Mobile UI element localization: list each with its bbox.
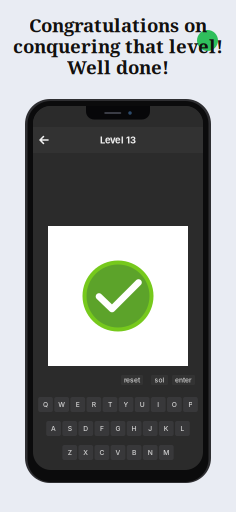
staticText: Well done! bbox=[67, 54, 169, 80]
staticText: E bbox=[76, 400, 80, 409]
staticText: Q bbox=[43, 400, 48, 409]
staticText: H bbox=[132, 424, 137, 433]
button[interactable]: N bbox=[143, 445, 157, 460]
button[interactable]: U bbox=[135, 397, 149, 412]
staticText: T bbox=[108, 400, 112, 409]
staticText: N bbox=[148, 448, 153, 457]
button[interactable]: K bbox=[159, 421, 174, 436]
button[interactable]: Z bbox=[62, 445, 77, 460]
staticText: F bbox=[100, 424, 104, 433]
staticText: W bbox=[58, 400, 65, 409]
staticText: S bbox=[68, 424, 72, 433]
button[interactable]: A bbox=[46, 421, 61, 436]
button[interactable]: W bbox=[54, 397, 69, 412]
button[interactable]: O bbox=[167, 397, 182, 412]
staticText: X bbox=[83, 448, 88, 457]
staticText: U bbox=[140, 400, 145, 409]
staticText: G bbox=[115, 424, 120, 433]
staticText: M bbox=[163, 448, 169, 457]
button[interactable]: H bbox=[127, 421, 141, 436]
button[interactable]: M bbox=[159, 445, 174, 460]
staticText: P bbox=[188, 400, 192, 409]
staticText: D bbox=[83, 424, 88, 433]
button[interactable]: X bbox=[78, 445, 93, 460]
button[interactable]: L bbox=[175, 421, 190, 436]
staticText: C bbox=[99, 448, 104, 457]
button[interactable]: F bbox=[94, 421, 109, 436]
button[interactable]: C bbox=[94, 445, 109, 460]
button[interactable]: T bbox=[103, 397, 117, 412]
staticText: Level 13 bbox=[100, 134, 136, 146]
staticText: A bbox=[51, 424, 56, 433]
button[interactable]: D bbox=[78, 421, 93, 436]
button[interactable]: R bbox=[86, 397, 101, 412]
staticText: B bbox=[132, 448, 136, 457]
button[interactable]: B bbox=[127, 445, 141, 460]
staticText: sol bbox=[154, 376, 164, 384]
staticText: enter bbox=[175, 376, 192, 384]
staticText: I bbox=[157, 400, 159, 409]
button[interactable]: S bbox=[62, 421, 77, 436]
button[interactable]: enter bbox=[172, 375, 195, 385]
staticText: Congratulations on bbox=[29, 12, 207, 38]
button[interactable]: Back bbox=[33, 129, 55, 150]
button[interactable]: P bbox=[183, 397, 198, 412]
button[interactable]: J bbox=[143, 421, 157, 436]
staticText: K bbox=[164, 424, 169, 433]
staticText: Y bbox=[123, 400, 128, 409]
staticText: reset bbox=[124, 376, 140, 384]
staticText: R bbox=[92, 400, 96, 409]
button[interactable]: reset bbox=[121, 375, 143, 385]
staticText: L bbox=[180, 424, 184, 433]
button[interactable]: V bbox=[111, 445, 125, 460]
staticText: Z bbox=[68, 448, 72, 457]
button[interactable]: I bbox=[151, 397, 166, 412]
staticText: V bbox=[115, 448, 120, 457]
button[interactable]: sol bbox=[151, 375, 168, 385]
button[interactable]: G bbox=[111, 421, 125, 436]
staticText: conquering that level! bbox=[13, 33, 223, 59]
button[interactable]: E bbox=[70, 397, 85, 412]
staticText: O bbox=[172, 400, 177, 409]
button[interactable]: Q bbox=[38, 397, 53, 412]
button[interactable]: Y bbox=[119, 397, 133, 412]
staticText: J bbox=[148, 424, 152, 433]
